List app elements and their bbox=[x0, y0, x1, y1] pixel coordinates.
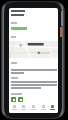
button[interactable]: Profile bbox=[48, 102, 57, 113]
button[interactable]: Action bbox=[11, 97, 16, 102]
button[interactable]: Updates bbox=[39, 102, 48, 113]
button[interactable]: Home bbox=[10, 102, 19, 113]
button[interactable]: Action bbox=[18, 97, 23, 102]
button[interactable]: Search bbox=[19, 102, 28, 113]
button[interactable]: Map bbox=[9, 41, 58, 58]
button[interactable]: Saved bbox=[29, 102, 38, 113]
